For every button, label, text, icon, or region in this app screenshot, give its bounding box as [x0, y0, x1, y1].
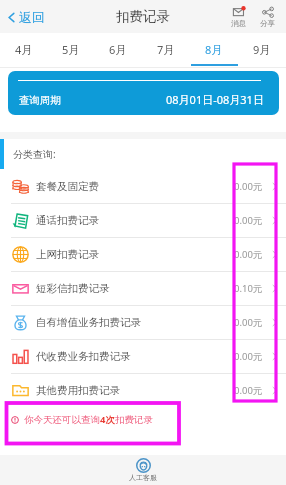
staticText: 0.00元	[234, 248, 263, 261]
staticText: 通话扣费记录	[36, 214, 99, 227]
button[interactable]: 6月	[94, 33, 142, 68]
staticText: 08月01日-08月31日	[166, 92, 264, 107]
staticText: 查询周期	[19, 94, 61, 107]
button[interactable]: 9月	[238, 33, 286, 68]
staticText: 自有增值业务扣费记录	[36, 316, 141, 329]
staticText: 套餐及固定费	[36, 180, 99, 193]
staticText: 其他费用扣费记录	[36, 384, 120, 397]
button[interactable]: 上网扣费记录	[0, 238, 286, 271]
button[interactable]: 人工客服	[121, 456, 165, 484]
staticText: 5月	[62, 42, 80, 57]
button[interactable]: 返回	[0, 5, 53, 29]
button[interactable]: 短彩信扣费记录	[0, 272, 286, 305]
staticText: 0.10元	[234, 282, 263, 295]
staticText: 短彩信扣费记录	[36, 282, 110, 295]
staticText: 7月	[157, 42, 175, 57]
staticText: 8月	[205, 42, 223, 57]
staticText: 扣费记录	[116, 8, 170, 25]
button[interactable]: 代收费业务扣费记录	[0, 340, 286, 373]
other: 分享	[261, 5, 275, 19]
staticText: 0.00元	[234, 214, 263, 227]
button[interactable]: 套餐及固定费	[0, 169, 286, 203]
button[interactable]: 通话扣费记录	[0, 204, 286, 237]
button[interactable]: 8月	[190, 33, 238, 68]
staticText: 代收费业务扣费记录	[36, 350, 131, 363]
button[interactable]: 其他费用扣费记录	[0, 374, 286, 407]
staticText: 9月	[253, 42, 271, 57]
button[interactable]: 4月	[0, 33, 47, 68]
staticText: 6月	[109, 42, 127, 57]
staticText: 返回	[19, 9, 45, 25]
other: 消息	[232, 5, 246, 19]
staticText: 分类查询:	[13, 147, 56, 161]
staticText: 4月	[15, 42, 33, 57]
staticText: 0.00元	[234, 384, 263, 397]
button[interactable]: 7月	[142, 33, 190, 68]
button[interactable]: 消息	[224, 2, 253, 31]
staticText: 分享	[260, 19, 275, 28]
staticText: 上网扣费记录	[36, 248, 99, 261]
button[interactable]: 5月	[47, 33, 94, 68]
staticText: 0.00元	[234, 180, 263, 193]
staticText: 0.00元	[234, 316, 263, 329]
staticText: 消息	[231, 19, 246, 28]
staticText: 0.00元	[234, 350, 263, 363]
staticText: 你今天还可以查询4次扣费记录	[24, 413, 153, 426]
staticText: 人工客服	[129, 473, 157, 482]
button[interactable]: 分享	[253, 2, 282, 31]
button[interactable]: 自有增值业务扣费记录	[0, 306, 286, 339]
